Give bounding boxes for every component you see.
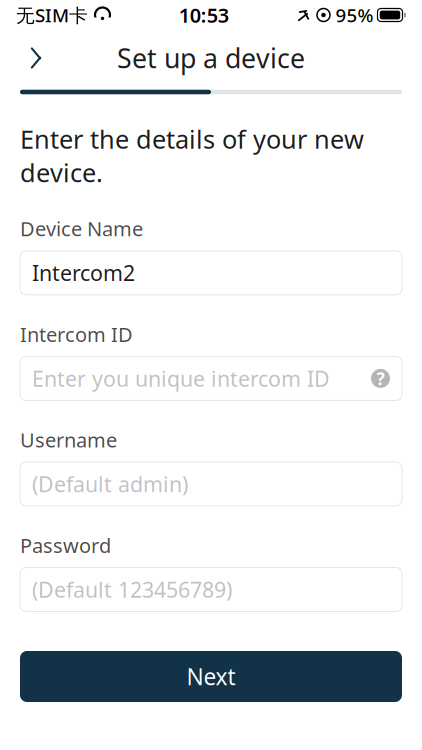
staticText: 10:53 xyxy=(179,2,229,28)
button[interactable]: (Default admin) xyxy=(20,462,402,506)
button[interactable]: (Default 123456789) xyxy=(20,567,402,611)
staticText: 无SIM卡 xyxy=(16,3,88,27)
staticText: Enter the details of your new device. xyxy=(20,122,364,189)
staticText: (Default 123456789) xyxy=(32,575,232,604)
button[interactable]: Next xyxy=(20,651,402,702)
staticText: (Default admin) xyxy=(32,470,188,498)
staticText: Next xyxy=(186,661,235,691)
staticText: Intercom2 xyxy=(32,259,135,287)
button[interactable]: Enter you unique intercom ID xyxy=(20,356,402,400)
button[interactable]: Intercom2 xyxy=(20,251,402,295)
staticText: 95% xyxy=(335,3,373,27)
staticText: Intercom ID xyxy=(20,321,133,347)
staticText: Device Name xyxy=(20,215,143,242)
staticText: Username xyxy=(20,426,117,453)
staticText: Password xyxy=(20,532,111,559)
staticText: Set up a device xyxy=(117,40,305,76)
staticText: ? xyxy=(376,367,384,390)
staticText: Enter you unique intercom ID xyxy=(32,364,330,392)
button[interactable]: Back xyxy=(14,36,58,80)
